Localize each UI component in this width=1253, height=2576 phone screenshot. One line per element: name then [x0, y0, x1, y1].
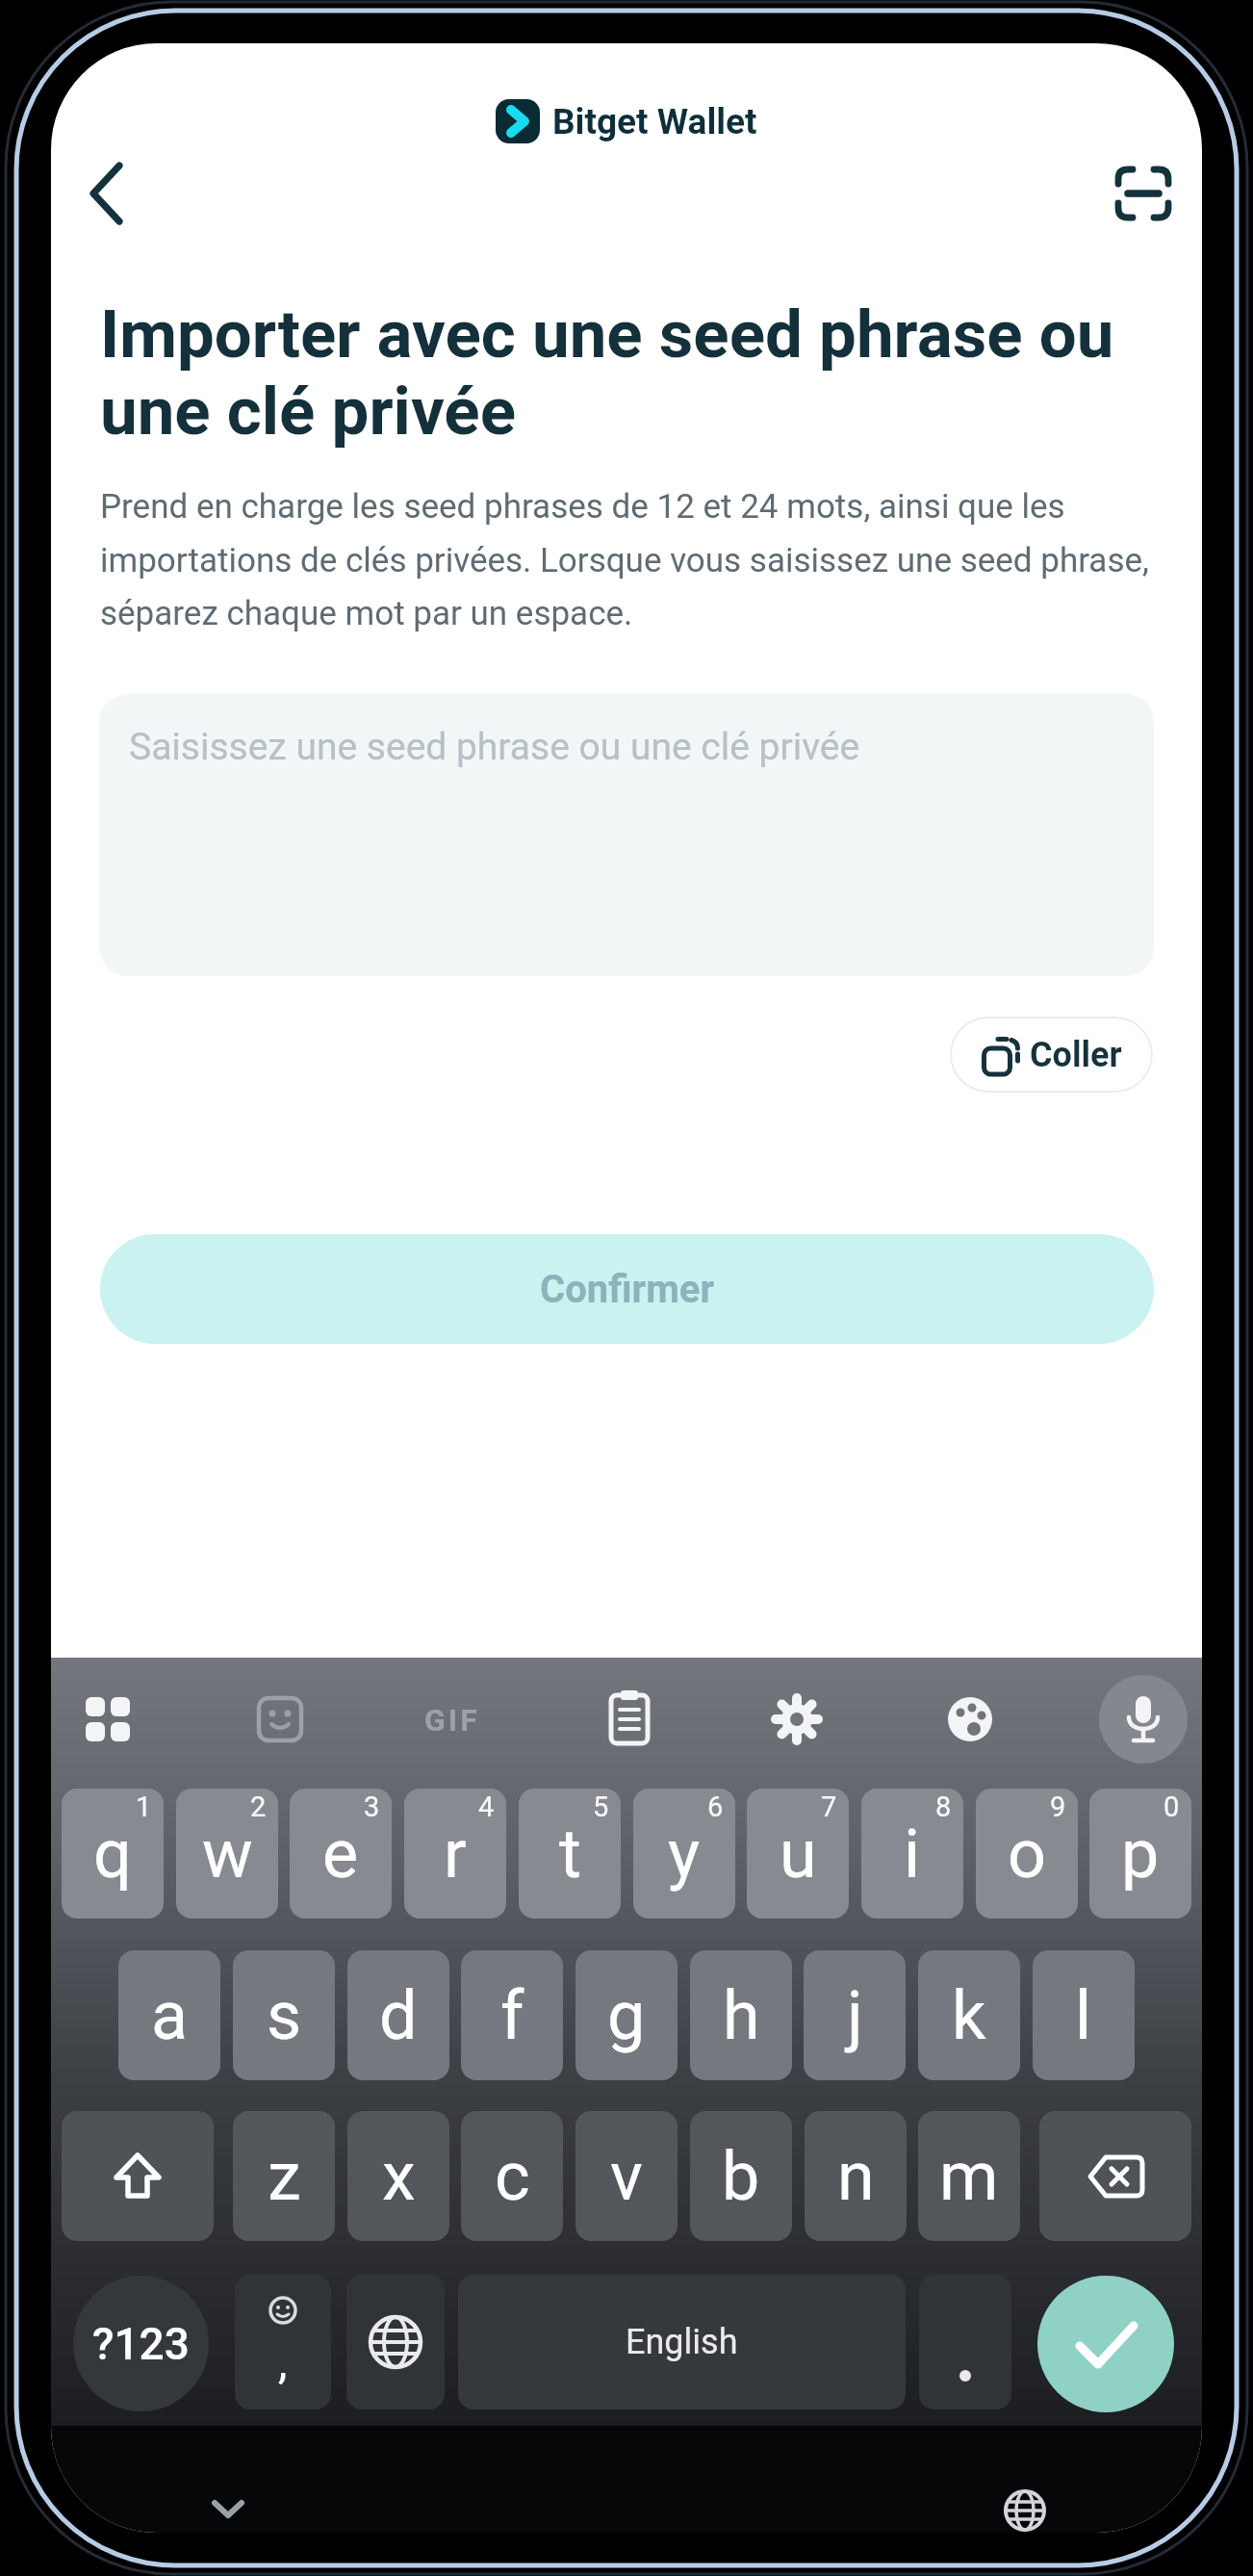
button[interactable]: Saisissez une seed phrase ou une clé pri… [99, 694, 1154, 976]
button[interactable]: ?123 [73, 2276, 209, 2411]
button[interactable]: r [404, 1789, 506, 1919]
staticText: 9 [1050, 1790, 1066, 1823]
staticText: 5 [593, 1790, 609, 1823]
button[interactable] [1037, 2276, 1174, 2412]
staticText: Confirmer [540, 1267, 715, 1312]
staticText: y [668, 1815, 701, 1893]
staticText: Importer avec une seed phrase ou une clé… [100, 296, 1114, 451]
button[interactable]: k [918, 1950, 1020, 2080]
staticText: GIF [424, 1702, 480, 1739]
staticText: ?123 [92, 2318, 190, 2370]
button[interactable] [346, 2275, 445, 2409]
staticText: q [93, 1815, 132, 1893]
button[interactable]: g [575, 1950, 678, 2080]
staticText: , [278, 2334, 288, 2388]
staticText: w [202, 1815, 253, 1893]
staticText: o [1008, 1815, 1046, 1893]
staticText: a [151, 1976, 189, 2055]
staticText: p [1121, 1815, 1160, 1893]
staticText: z [268, 2137, 301, 2216]
staticText: n [837, 2137, 875, 2216]
button[interactable]: p [1089, 1789, 1191, 1919]
button[interactable] [62, 2111, 214, 2241]
staticText: 1 [136, 1790, 152, 1823]
button[interactable]: y [633, 1789, 735, 1919]
staticText: 8 [935, 1790, 952, 1823]
staticText: d [379, 1976, 418, 2055]
button[interactable]: m [918, 2111, 1020, 2241]
button[interactable]: Confirmer [100, 1234, 1154, 1344]
staticText: b [722, 2137, 760, 2216]
button[interactable]: Coller [950, 1017, 1153, 1093]
staticText: 0 [1163, 1790, 1180, 1823]
staticText: 3 [364, 1790, 380, 1823]
button[interactable]: u [747, 1789, 849, 1919]
staticText: t [559, 1815, 581, 1893]
button[interactable] [1114, 165, 1172, 222]
button[interactable]: t [519, 1789, 621, 1919]
button[interactable]: z [233, 2111, 335, 2241]
button[interactable]: w [176, 1789, 278, 1919]
staticText: g [607, 1976, 646, 2055]
button[interactable]: l [1033, 1950, 1135, 2080]
staticText: 7 [821, 1790, 837, 1823]
button[interactable]: b [690, 2111, 792, 2241]
button[interactable]: f [461, 1950, 563, 2080]
button[interactable]: v [575, 2111, 678, 2241]
staticText: s [267, 1976, 302, 2055]
staticText: English [626, 2322, 738, 2362]
button[interactable]: English [458, 2275, 906, 2409]
staticText: h [723, 1976, 760, 2055]
button[interactable]: , [235, 2275, 331, 2409]
staticText: x [382, 2137, 416, 2216]
button[interactable]: a [118, 1950, 220, 2080]
staticText: Coller [1030, 1035, 1122, 1075]
staticText: u [780, 1815, 817, 1893]
staticText: j [847, 1976, 863, 2055]
button[interactable]: o [976, 1789, 1078, 1919]
button[interactable]: c [461, 2111, 563, 2241]
staticText: v [610, 2137, 643, 2216]
staticText: 2 [250, 1790, 267, 1823]
button[interactable]: d [347, 1950, 449, 2080]
staticText: f [500, 1976, 524, 2055]
staticText: Bitget Wallet [552, 101, 757, 142]
staticText: 6 [707, 1790, 724, 1823]
staticText: l [1075, 1976, 1092, 2055]
button[interactable]: i [861, 1789, 963, 1919]
staticText: k [952, 1976, 986, 2055]
button[interactable] [919, 2275, 1011, 2409]
staticText: c [495, 2137, 530, 2216]
button[interactable] [1039, 2111, 1191, 2241]
button[interactable]: n [805, 2111, 907, 2241]
button[interactable]: j [804, 1950, 906, 2080]
staticText: m [939, 2137, 999, 2216]
staticText: Saisissez une seed phrase ou une clé pri… [129, 725, 860, 769]
button[interactable] [80, 152, 138, 229]
staticText: i [904, 1815, 921, 1893]
staticText: e [322, 1815, 359, 1893]
button[interactable]: e [290, 1789, 392, 1919]
button[interactable]: x [347, 2111, 449, 2241]
staticText: r [444, 1815, 467, 1893]
staticText: Prend en charge les seed phrases de 12 e… [100, 487, 1149, 632]
staticText: 4 [478, 1790, 495, 1823]
button[interactable]: q [62, 1789, 164, 1919]
button[interactable]: s [233, 1950, 335, 2080]
button[interactable]: h [690, 1950, 792, 2080]
